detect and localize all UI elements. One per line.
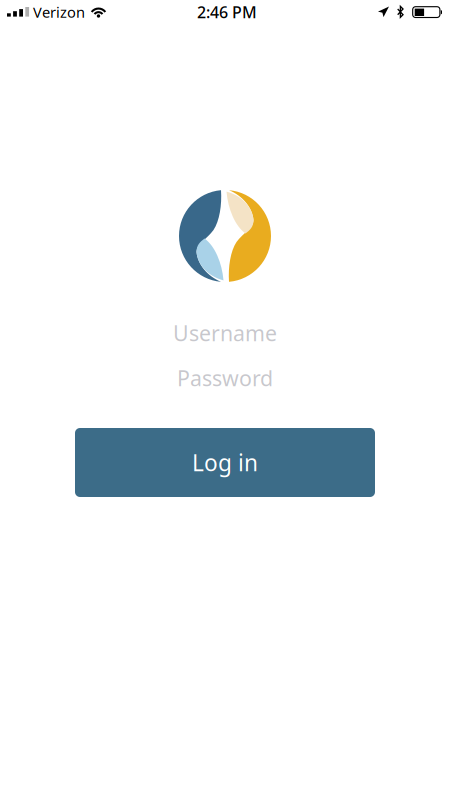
button[interactable]: Log in	[75, 428, 375, 497]
staticText: Username	[173, 319, 277, 347]
staticText: Verizon	[33, 2, 85, 22]
button[interactable]: Password	[0, 365, 450, 391]
button[interactable]: Username	[0, 320, 450, 346]
staticText: Log in	[192, 447, 258, 477]
staticText: 2:46 PM	[197, 1, 257, 23]
staticText: Password	[177, 364, 273, 392]
